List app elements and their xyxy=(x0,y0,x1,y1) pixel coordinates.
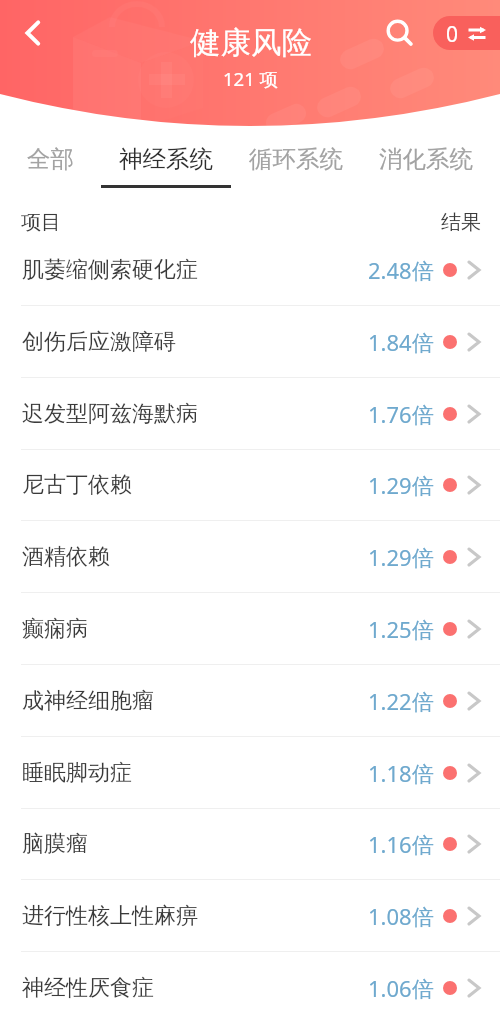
staticText: 进行性核上性麻痹 xyxy=(22,902,198,930)
staticText: 121 项 xyxy=(223,66,279,91)
button[interactable]: 神经系统 xyxy=(101,126,231,194)
staticText: 创伤后应激障碍 xyxy=(22,328,176,356)
staticText: 项目 xyxy=(21,210,61,235)
button[interactable]: 创伤后应激障碍 xyxy=(0,306,500,378)
button[interactable]: 尼古丁依赖 xyxy=(0,449,500,521)
staticText: 1.76倍 xyxy=(368,399,434,429)
staticText: 0 xyxy=(446,20,459,49)
button[interactable]: 进行性核上性麻痹 xyxy=(0,880,500,952)
button[interactable]: 消化系统 xyxy=(361,126,491,194)
staticText: 消化系统 xyxy=(379,144,473,174)
button[interactable]: Compare list xyxy=(433,16,500,50)
staticText: 1.06倍 xyxy=(368,973,434,1003)
staticText: 1.29倍 xyxy=(368,542,434,572)
button[interactable]: 迟发型阿兹海默病 xyxy=(0,378,500,450)
button[interactable]: 酒精依赖 xyxy=(0,521,500,593)
staticText: 1.84倍 xyxy=(368,327,434,357)
button[interactable]: 循环系统 xyxy=(231,126,361,194)
staticText: 脑膜瘤 xyxy=(22,830,88,858)
staticText: 癫痫病 xyxy=(22,615,88,643)
button[interactable]: Back xyxy=(9,11,53,55)
staticText: 循环系统 xyxy=(249,144,343,174)
button[interactable]: 肌萎缩侧索硬化症 xyxy=(0,234,500,306)
staticText: 全部 xyxy=(27,144,74,174)
staticText: 1.25倍 xyxy=(368,614,434,644)
button[interactable]: 脑膜瘤 xyxy=(0,808,500,880)
staticText: 结果 xyxy=(441,210,481,235)
staticText: 肌萎缩侧索硬化症 xyxy=(22,256,198,284)
staticText: 1.18倍 xyxy=(368,758,434,788)
staticText: 成神经细胞瘤 xyxy=(22,687,154,715)
staticText: 2.48倍 xyxy=(368,255,434,285)
staticText: 睡眠脚动症 xyxy=(22,759,132,787)
button[interactable]: 睡眠脚动症 xyxy=(0,737,500,809)
staticText: 1.22倍 xyxy=(368,686,434,716)
button[interactable]: 癫痫病 xyxy=(0,593,500,665)
staticText: 尼古丁依赖 xyxy=(22,471,132,499)
staticText: 1.16倍 xyxy=(368,829,434,859)
button[interactable]: Search xyxy=(376,11,420,55)
staticText: 神经系统 xyxy=(119,144,213,174)
staticText: 神经性厌食症 xyxy=(22,974,154,1002)
staticText: 酒精依赖 xyxy=(22,543,110,571)
staticText: 1.08倍 xyxy=(368,901,434,931)
button[interactable]: 全部 xyxy=(0,126,115,194)
button[interactable]: 神经性厌食症 xyxy=(0,952,500,1018)
button[interactable]: 成神经细胞瘤 xyxy=(0,665,500,737)
staticText: 迟发型阿兹海默病 xyxy=(22,400,198,428)
staticText: 1.29倍 xyxy=(368,470,434,500)
staticText: 健康风险 xyxy=(190,24,312,62)
